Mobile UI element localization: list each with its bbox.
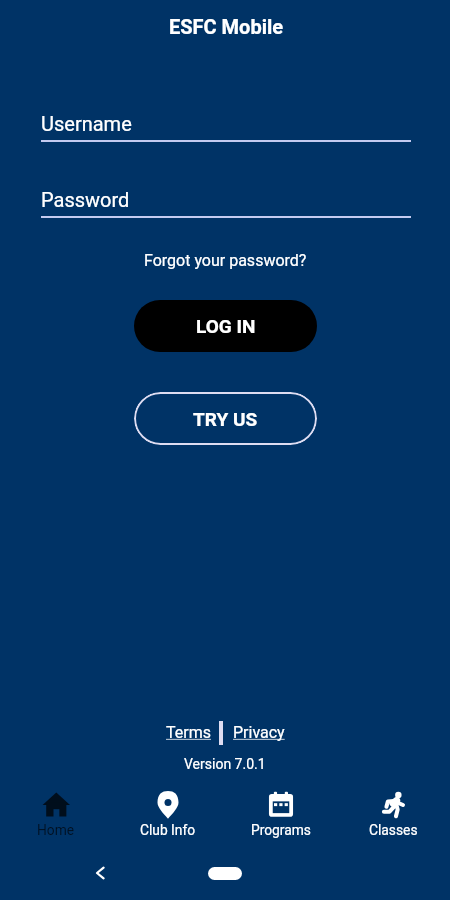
button[interactable]: LOG IN xyxy=(134,300,317,352)
staticText: ESFC Mobile xyxy=(169,15,284,38)
staticText: Programs xyxy=(251,822,311,838)
button[interactable]: Classes xyxy=(337,790,450,838)
staticText: Username xyxy=(41,112,132,135)
staticText: Password xyxy=(41,188,130,211)
staticText: LOG IN xyxy=(196,315,256,337)
staticText: Classes xyxy=(369,822,418,838)
button[interactable]: TRY US xyxy=(134,392,317,445)
staticText: Privacy xyxy=(233,723,285,742)
staticText: Home xyxy=(37,822,75,838)
button[interactable]: Forgot your password? xyxy=(134,247,317,274)
staticText: TRY US xyxy=(193,408,258,430)
staticText: Terms xyxy=(166,723,211,742)
button[interactable]: Privacy xyxy=(233,723,285,742)
button[interactable]: Programs xyxy=(224,790,337,838)
staticText: Club Info xyxy=(140,822,196,838)
button[interactable]: Home xyxy=(208,867,242,880)
button[interactable]: Back xyxy=(85,858,115,888)
button[interactable]: Terms xyxy=(166,723,211,742)
staticText: Version 7.0.1 xyxy=(184,756,266,772)
button[interactable]: Home xyxy=(0,790,112,838)
staticText: Forgot your password? xyxy=(144,251,307,270)
button[interactable]: Club Info xyxy=(112,790,224,838)
